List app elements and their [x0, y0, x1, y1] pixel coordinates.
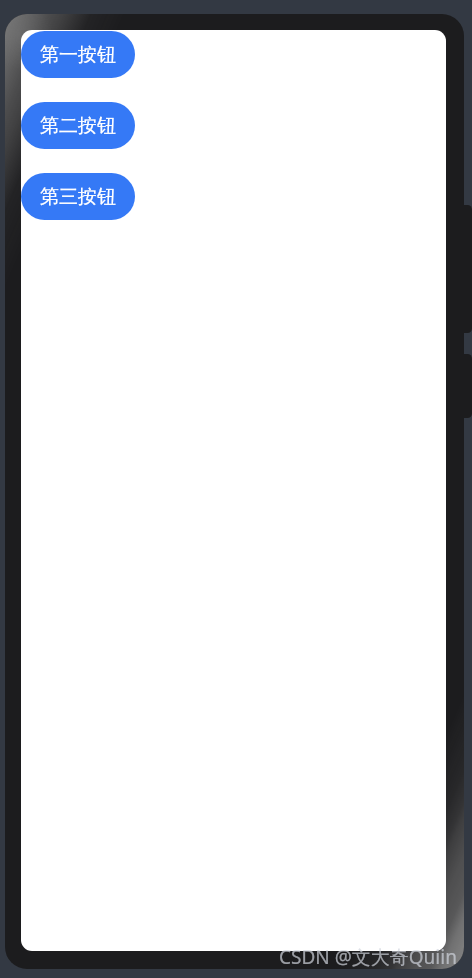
button[interactable]: 第三按钮 — [21, 173, 135, 220]
button[interactable]: Power — [463, 354, 472, 418]
staticText: 第三按钮 — [40, 185, 116, 209]
staticText: 第一按钮 — [40, 43, 116, 67]
button[interactable]: 第一按钮 — [21, 31, 135, 78]
button[interactable]: 第二按钮 — [21, 102, 135, 149]
staticText: 第二按钮 — [40, 114, 116, 138]
staticText: CSDN @文大奇Quiin — [279, 944, 457, 970]
